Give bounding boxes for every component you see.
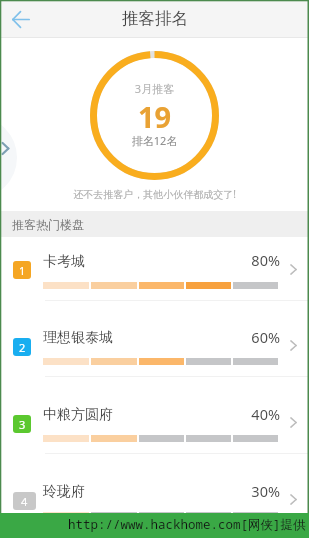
other: Previous [2,142,9,155]
staticText: 中粮方圆府 [43,406,113,424]
button[interactable]: 3 [0,376,309,453]
staticText: 推客排名 [122,8,188,29]
button[interactable]: Back [5,3,36,35]
staticText: 推客热门楼盘 [12,217,84,232]
button[interactable]: 1 [0,237,309,300]
staticText: 玲珑府 [43,483,85,501]
staticText: 19 [90,97,219,136]
staticText: 理想银泰城 [43,329,113,347]
staticText: 40% [200,404,280,424]
button[interactable]: Previous [0,116,17,199]
staticText: 60% [200,327,280,347]
staticText: 3月推客 [90,81,219,96]
staticText: 4 [21,494,28,509]
staticText: 2 [19,340,26,355]
staticText: 1 [19,263,26,278]
staticText: 80% [200,250,280,270]
staticText: 排名12名 [90,133,219,148]
staticText: 30% [200,481,280,501]
button[interactable]: 4 [0,453,309,538]
staticText: http://www.hackhome.com[网侠]提供 [68,516,306,533]
staticText: 卡考城 [43,253,85,271]
button[interactable]: 2 [0,300,309,376]
staticText: 还不去推客户，其他小伙伴都成交了! [0,187,309,201]
staticText: 3 [19,417,26,432]
